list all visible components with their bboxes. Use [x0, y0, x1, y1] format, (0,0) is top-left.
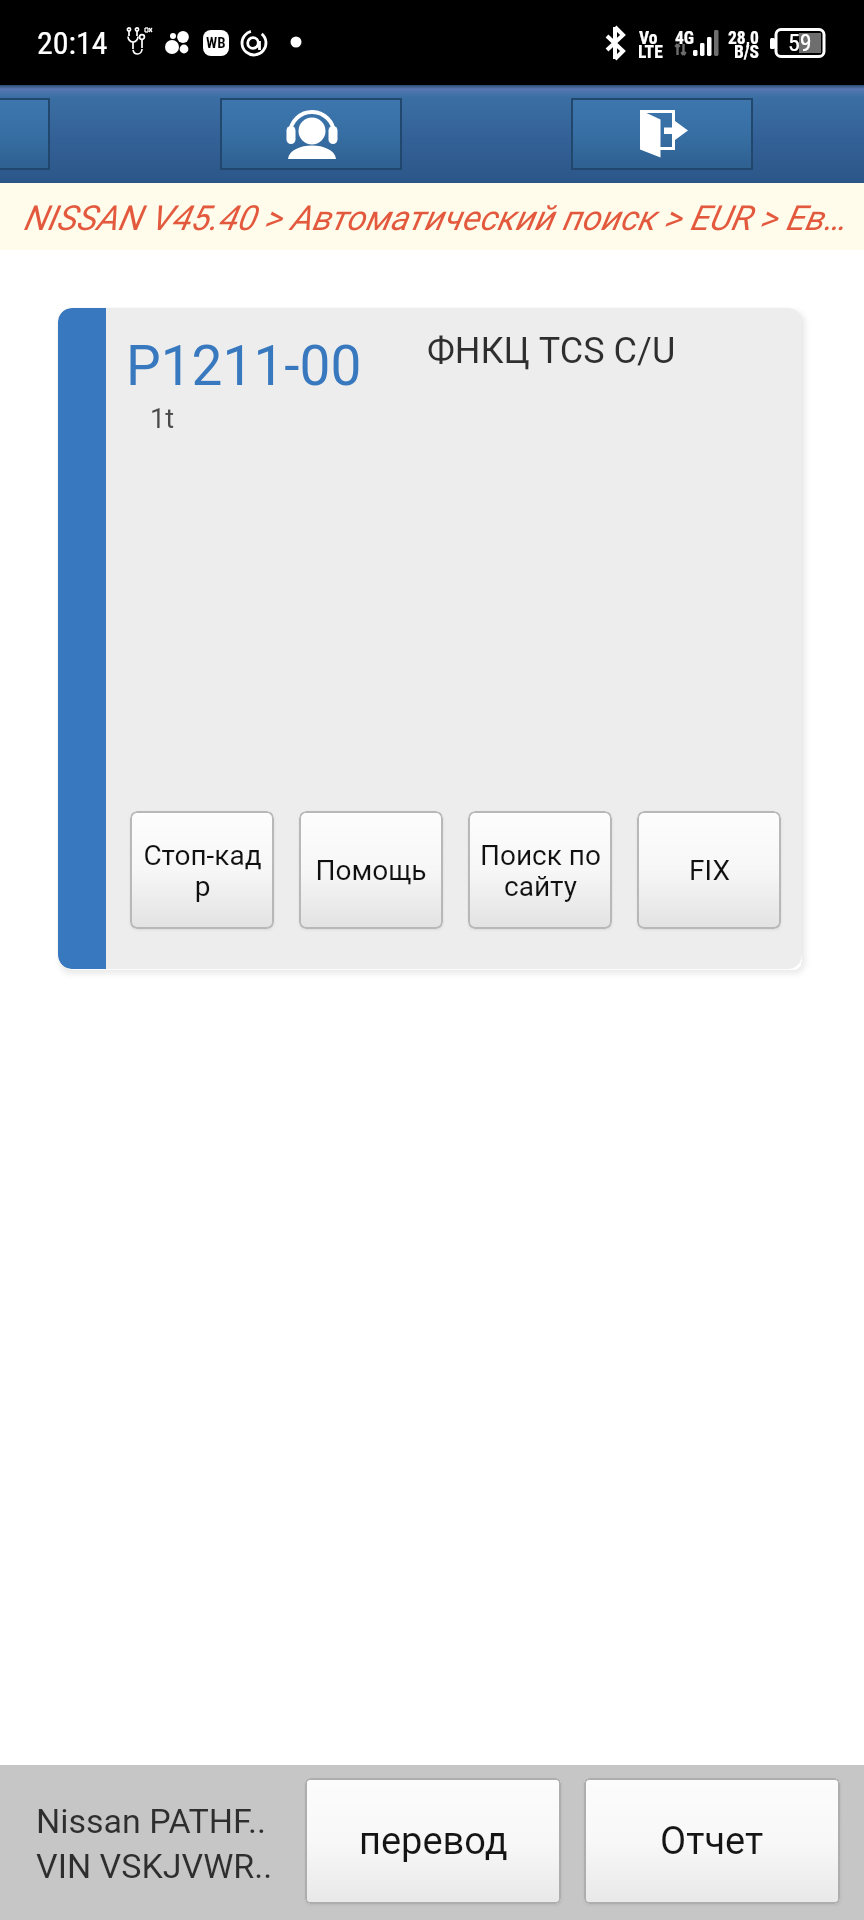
- staticText: Отчет: [660, 1819, 764, 1864]
- button[interactable]: Помощь: [299, 811, 443, 929]
- staticText: B/S: [734, 42, 760, 63]
- staticText: Поиск по сайту: [480, 839, 601, 902]
- staticText: 1t: [150, 403, 175, 435]
- staticText: P1211-00: [126, 334, 362, 398]
- button[interactable]: Отчет: [584, 1778, 840, 1904]
- staticText: Помощь: [315, 854, 427, 887]
- button[interactable]: Поиск по сайту: [468, 811, 612, 929]
- staticText: 59: [788, 29, 812, 57]
- staticText: 28,0: [728, 28, 759, 49]
- staticText: NISSAN V45.40 > Автоматический поиск > E…: [23, 198, 847, 238]
- button[interactable]: Exit: [571, 98, 753, 170]
- button[interactable]: P1211-00: [58, 308, 802, 969]
- staticText: 20:14: [37, 24, 108, 62]
- staticText: 4G: [675, 28, 695, 49]
- button[interactable]: Support: [220, 98, 402, 170]
- staticText: перевод: [359, 1819, 508, 1864]
- button[interactable]: Menu: [0, 98, 50, 170]
- staticText: LTE: [638, 42, 663, 63]
- staticText: VIN VSKJVWR..: [36, 1846, 273, 1886]
- button[interactable]: FIX: [637, 811, 781, 929]
- staticText: Nissan PATHF..: [36, 1801, 266, 1841]
- staticText: ФНКЦ TCS C/U: [427, 330, 676, 372]
- staticText: FIX: [689, 854, 730, 887]
- staticText: Vo: [639, 28, 658, 49]
- staticText: Стоп-кад р: [143, 839, 262, 902]
- staticText: WB: [206, 34, 226, 52]
- button[interactable]: перевод: [305, 1778, 561, 1904]
- button[interactable]: Стоп-кад р: [130, 811, 274, 929]
